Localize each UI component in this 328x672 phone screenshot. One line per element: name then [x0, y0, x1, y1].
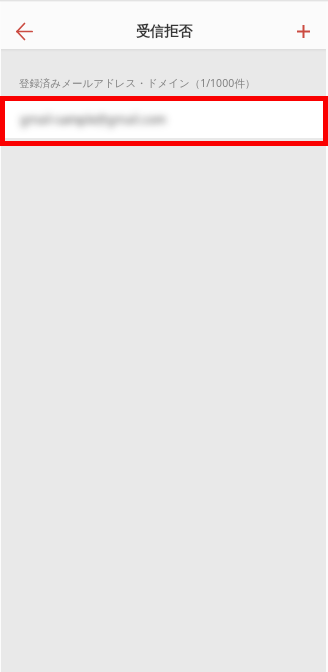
button[interactable]: gmail-sample@gmail.com — [1, 101, 326, 138]
staticText: 登録済みメールアドレス・ドメイン（1/1000件） — [19, 76, 256, 90]
button[interactable]: Add — [286, 12, 323, 49]
button[interactable]: Back — [6, 12, 43, 49]
staticText: 受信拒否 — [136, 23, 192, 41]
staticText: gmail-sample@gmail.com — [20, 111, 167, 127]
